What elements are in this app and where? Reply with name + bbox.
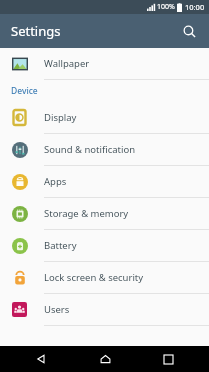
staticText: Wallpaper — [44, 57, 90, 70]
button[interactable]: Users — [0, 294, 209, 325]
staticText: Device — [11, 85, 38, 97]
staticText: Sound & notification — [44, 143, 136, 156]
staticText: 10:00 — [185, 2, 205, 12]
button[interactable]: Sound & notification — [0, 134, 209, 165]
staticText: Users — [44, 303, 70, 316]
button[interactable]: Apps — [0, 166, 209, 197]
staticText: Storage & memory — [44, 207, 129, 220]
staticText: Display — [44, 111, 77, 124]
button[interactable]: Battery — [0, 230, 209, 261]
staticText: Battery — [44, 239, 77, 252]
staticText: 100% — [157, 2, 175, 12]
staticText: Apps — [44, 175, 67, 188]
button[interactable]: Wallpaper — [0, 48, 209, 79]
button[interactable]: Search — [175, 17, 203, 45]
button[interactable]: Display — [0, 102, 209, 133]
button[interactable]: Recent apps — [145, 346, 191, 372]
button[interactable]: Storage & memory — [0, 198, 209, 229]
button[interactable]: Back — [18, 346, 64, 372]
button[interactable]: Lock screen & security — [0, 262, 209, 293]
button[interactable]: Home — [82, 346, 128, 372]
staticText: Lock screen & security — [44, 271, 144, 284]
staticText: Settings — [11, 22, 61, 40]
